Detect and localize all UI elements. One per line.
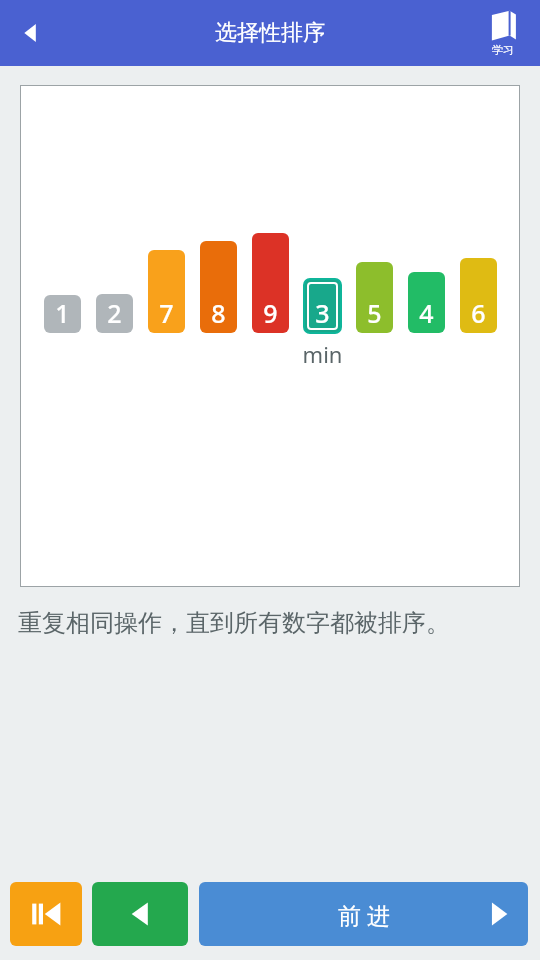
staticText: 1 <box>55 296 70 330</box>
staticText: 7 <box>159 296 174 330</box>
staticText: 重复相同操作，直到所有数字都被排序。 <box>18 608 540 638</box>
staticText: 8 <box>211 296 226 330</box>
staticText: min <box>290 339 355 369</box>
staticText: 6 <box>471 296 486 330</box>
staticText: 9 <box>263 296 278 330</box>
staticText: 4 <box>419 296 434 330</box>
staticText: 2 <box>107 296 122 330</box>
staticText: 3 <box>315 296 330 330</box>
staticText: 选择性排序 <box>215 19 325 47</box>
button[interactable]: 后退 <box>92 882 188 946</box>
staticText: 5 <box>367 296 382 330</box>
button[interactable]: 返回 <box>4 5 60 61</box>
button[interactable]: 重新开始 <box>10 882 82 946</box>
staticText: 前 进 <box>338 899 390 930</box>
button[interactable]: 前 进 <box>199 882 528 946</box>
button[interactable]: 学习 <box>476 10 530 57</box>
staticText: 学习 <box>492 43 514 57</box>
